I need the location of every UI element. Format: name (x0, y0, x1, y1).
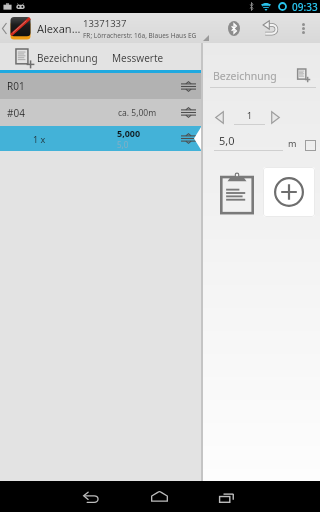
staticText: 13371337 (83, 17, 127, 30)
staticText: Messwerte (112, 51, 164, 65)
button[interactable]: Recents (201, 481, 251, 512)
button[interactable]: Bezeichnung (0, 43, 102, 73)
staticText: 09:33 (292, 0, 318, 13)
button[interactable]: Back (66, 481, 116, 512)
button[interactable]: #04 (0, 99, 201, 126)
staticText: R01 (7, 79, 25, 93)
button[interactable]: Add (263, 167, 315, 217)
staticText: ca. 5,00m (118, 107, 157, 119)
button[interactable]: 1 x (0, 126, 201, 151)
staticText: Bezeichnung (213, 69, 277, 83)
button[interactable]: New label (294, 66, 313, 85)
button[interactable]: R01 (0, 73, 201, 99)
staticText: Bezeichnung (37, 51, 98, 65)
button[interactable]: Notes (217, 168, 257, 217)
staticText: Alexan… (37, 21, 81, 36)
button[interactable]: Home (134, 481, 184, 512)
staticText: 5,0 (219, 133, 235, 148)
button[interactable]: More options (286, 13, 320, 43)
staticText: 1 x (33, 133, 46, 145)
staticText: m (288, 137, 297, 149)
button[interactable]: Next (268, 110, 283, 125)
button[interactable]: Bluetooth (214, 13, 254, 43)
button[interactable]: Previous (212, 110, 227, 125)
button[interactable]: Undo (254, 13, 286, 43)
button[interactable]: Up (0, 13, 81, 43)
staticText: 5,000 (117, 127, 141, 139)
button[interactable]: Unit checkbox (305, 140, 316, 151)
staticText: 5,0 (117, 139, 129, 150)
staticText: 1 (234, 109, 265, 122)
button[interactable]: 13371337 (83, 13, 214, 43)
staticText: FR; Lörracherstr. 16a, Blaues Haus EG (83, 31, 197, 40)
button[interactable]: Messwerte (102, 43, 174, 73)
staticText: #04 (7, 106, 25, 120)
